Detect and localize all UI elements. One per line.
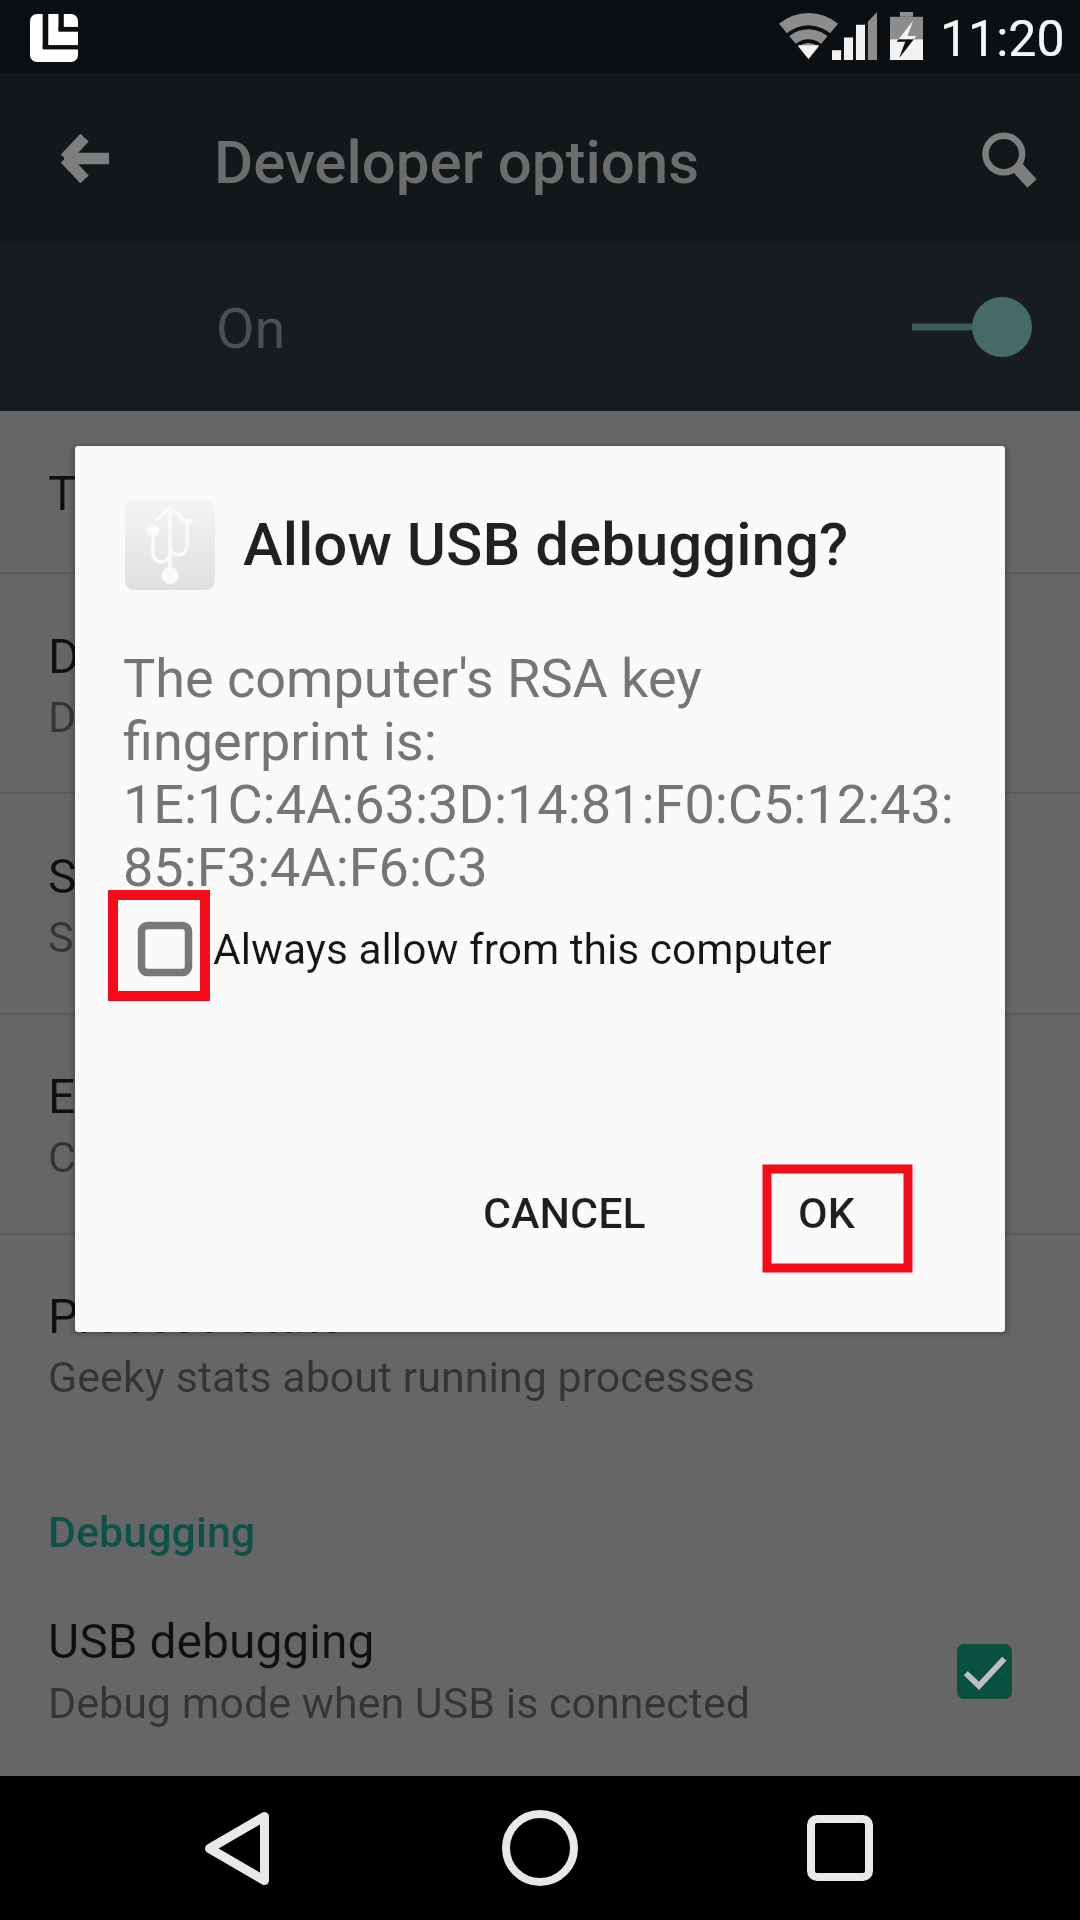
staticText: CANCEL [483, 1188, 646, 1238]
staticText: Capture all bluetooth HCI packets in a f… [48, 1132, 835, 1182]
staticText: Desktop full backups aren't currently pr… [48, 692, 934, 742]
button[interactable]: Home [470, 1778, 610, 1918]
button[interactable]: Stay awake [0, 804, 1080, 1024]
staticText: The computer's RSA key fingerprint is: 1… [123, 647, 954, 899]
button[interactable]: Developer options on [902, 279, 1038, 379]
staticText: Debug mode when USB is connected [48, 1678, 750, 1728]
button[interactable]: Recent apps [770, 1778, 910, 1918]
staticText: Stay awake [48, 848, 291, 904]
button[interactable]: Back [167, 1778, 307, 1918]
button[interactable]: Process Stats [0, 1244, 1080, 1464]
button[interactable]: USB debugging [0, 1582, 1080, 1776]
staticText: On [216, 296, 286, 362]
staticText: Enable Bluetooth HCI snoop log [48, 1068, 723, 1124]
button[interactable]: CANCEL [444, 1163, 684, 1263]
button[interactable]: Enable Bluetooth HCI snoop log [0, 1024, 1080, 1244]
staticText: Take bug report [48, 465, 383, 521]
staticText: Debugging [48, 1507, 256, 1557]
staticText: Screen will never sleep while charging [48, 912, 770, 962]
staticText: Geeky stats about running processes [48, 1352, 756, 1402]
button[interactable]: Always allow from this computer [104, 894, 938, 1005]
button[interactable]: Take bug report [0, 421, 1080, 581]
staticText: USB debugging [48, 1613, 375, 1669]
button[interactable]: Desktop backup password [0, 584, 1080, 804]
staticText: Desktop backup password [48, 628, 613, 684]
staticText: Always allow from this computer [213, 925, 832, 975]
staticText: 11:20 [940, 10, 1065, 69]
button[interactable]: Search [952, 110, 1048, 206]
button[interactable]: Navigate up [36, 110, 132, 206]
staticText: Developer options [214, 127, 700, 197]
button[interactable]: OK [752, 1163, 901, 1262]
staticText: Allow USB debugging? [243, 509, 849, 579]
staticText: OK [798, 1188, 855, 1238]
staticText: Process Stats [48, 1288, 345, 1344]
